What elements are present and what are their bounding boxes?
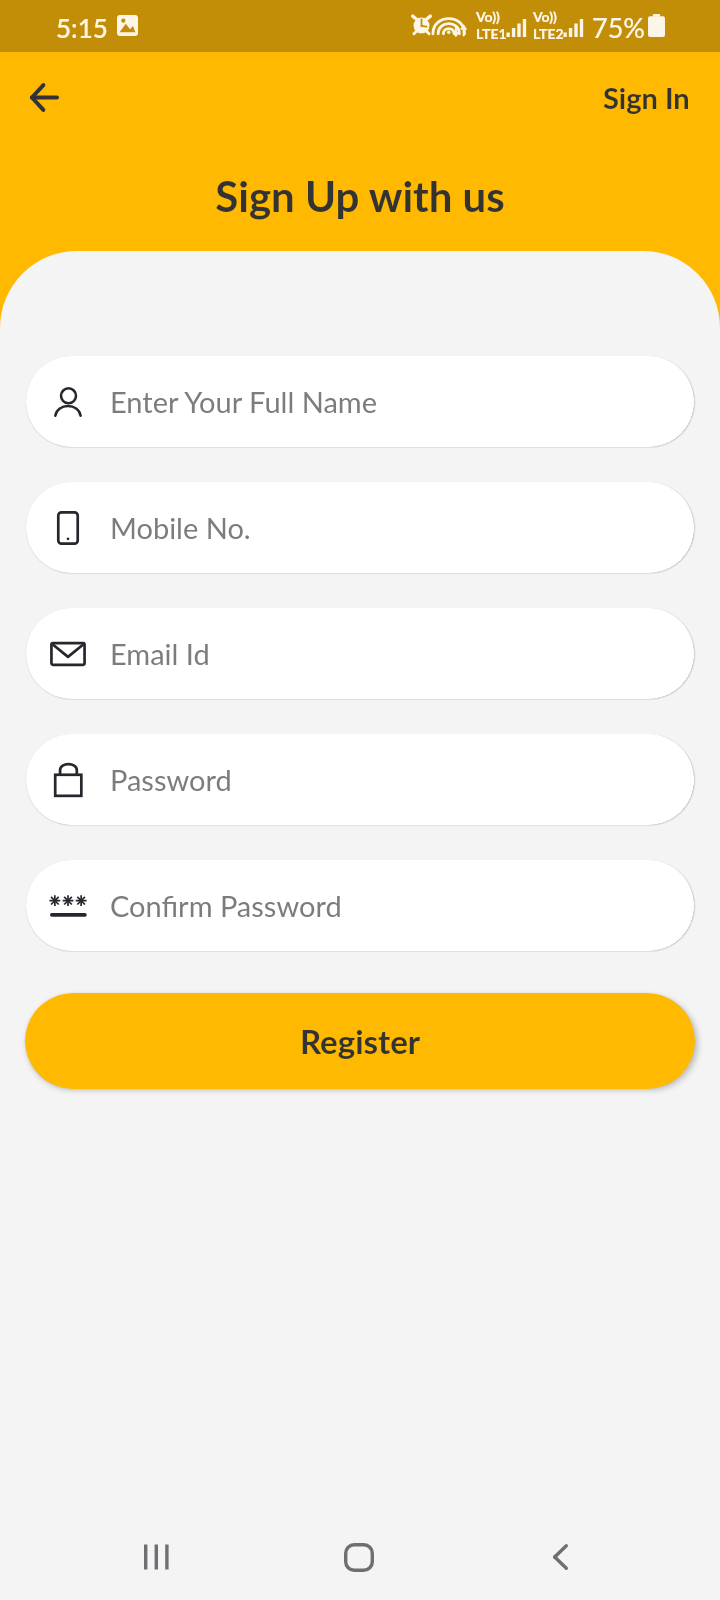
button[interactable]: Sign In [585, 70, 720, 125]
staticText: Confirm Password [110, 888, 342, 923]
button[interactable]: Home [319, 1527, 399, 1587]
staticText: Mobile No. [110, 510, 251, 545]
staticText: 5:15 [56, 12, 108, 43]
staticText: Vo)) [476, 8, 500, 25]
button[interactable]: Confirm Password [26, 860, 694, 951]
button[interactable]: Recent apps [116, 1527, 196, 1587]
staticText: LTE2 [533, 25, 564, 42]
button[interactable]: Register [25, 993, 695, 1089]
staticText: Sign In [603, 80, 690, 115]
staticText: Enter Your Full Name [110, 384, 377, 419]
button[interactable]: Back [520, 1527, 600, 1587]
button[interactable]: Password [26, 734, 694, 825]
button[interactable]: Enter Your Full Name [26, 356, 694, 447]
staticText: Register [300, 1021, 421, 1061]
staticText: LTE1 [476, 25, 507, 42]
staticText: Sign Up with us [0, 171, 720, 221]
staticText: 75% [592, 11, 645, 43]
staticText: Email Id [110, 636, 210, 671]
staticText: Password [110, 762, 232, 797]
button[interactable]: Back [14, 67, 74, 127]
button[interactable]: Email Id [26, 608, 694, 699]
button[interactable]: Mobile No. [26, 482, 694, 573]
staticText: Vo)) [533, 8, 557, 25]
